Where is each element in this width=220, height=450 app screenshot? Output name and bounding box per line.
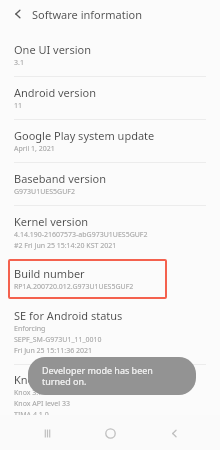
staticText: Software information [32,7,142,22]
button[interactable]: Build number [8,259,167,299]
staticText: 11 [14,101,23,111]
staticText: April 1, 2021 [14,144,55,154]
staticText: #2 Fri Jun 25 15:14:20 KST 2021 [14,241,117,251]
button[interactable]: Back [8,4,28,24]
staticText: RP1A.200720.012.G973U1UES5GUF2 [14,282,134,292]
button[interactable]: Android version [0,77,220,119]
button[interactable]: Home [93,416,127,450]
button[interactable]: Recents [30,416,64,450]
staticText: DualDAR 1.3.0 [14,421,61,431]
staticText: Knox 3.7 [14,388,43,398]
staticText: 3.1 [14,58,24,68]
staticText: G973U1UES5GUF2 [14,187,75,197]
button[interactable]: Kernel version [0,206,220,259]
button[interactable]: Baseband version [0,163,220,205]
button[interactable]: Back [157,416,191,450]
button[interactable]: Google Play system update [0,120,220,162]
button[interactable]: SE for Android status [0,303,220,364]
staticText: Build number [14,266,85,281]
staticText: 4.14.190-21607573-abG973U1UES5GUF2 [14,230,148,240]
staticText: Knox API level 33 [14,399,70,409]
staticText: Fri Jun 25 15:11:36 2021 [14,346,92,356]
button[interactable]: Knox version [0,365,220,439]
staticText: SE for Android status [14,308,123,323]
staticText: Baseband version [14,171,107,186]
staticText: Enforcing [14,324,46,334]
staticText: Android version [14,85,96,100]
staticText: Developer mode has been turned on. [42,364,182,388]
staticText: One UI version [14,42,91,57]
staticText: SEPF_SM-G973U1_11_0010 [14,335,102,345]
staticText: Google Play system update [14,128,155,143]
staticText: TIMA 4.1.0 [14,410,49,420]
button[interactable]: One UI version [0,34,220,76]
staticText: Kernel version [14,214,89,229]
staticText: Knox version [14,372,81,387]
